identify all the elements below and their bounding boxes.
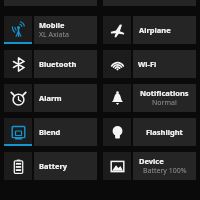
other: Bluetooth xyxy=(4,50,32,78)
button[interactable]: Airplane mode xyxy=(103,16,196,44)
staticText: Bluetooth xyxy=(39,59,77,69)
staticText: Normal xyxy=(152,98,177,108)
button[interactable]: Battery saving xyxy=(4,152,97,180)
other: Wi-Fi xyxy=(103,50,131,78)
other: Flashlight xyxy=(103,118,131,146)
staticText: Notifications xyxy=(140,88,189,98)
other: Mobile network xyxy=(4,16,32,44)
staticText: Device monitor xyxy=(139,156,190,166)
staticText: XL Axiata xyxy=(39,30,69,40)
staticText: Airplane mode xyxy=(139,25,190,35)
other: Notifications xyxy=(103,84,131,112)
staticText: Battery 100% xyxy=(143,166,187,176)
other: Battery saving xyxy=(4,152,32,180)
other: Device monitor xyxy=(103,152,131,180)
other: Blend xyxy=(4,118,32,146)
button[interactable]: Flashlight xyxy=(103,118,196,146)
staticText: Mobile network xyxy=(39,20,92,30)
button[interactable]: Alarm xyxy=(4,84,97,112)
staticText: Blend xyxy=(39,127,61,137)
button[interactable]: Device monitor xyxy=(103,152,196,180)
button[interactable]: Blend xyxy=(4,118,97,146)
button[interactable]: Wi-Fi xyxy=(103,50,196,78)
button[interactable]: Mobile network xyxy=(4,16,97,44)
other: Airplane mode xyxy=(103,16,131,44)
staticText: Wi-Fi xyxy=(138,59,157,69)
button[interactable]: Notifications xyxy=(103,84,196,112)
staticText: Flashlight xyxy=(146,127,183,137)
other: Alarm xyxy=(4,84,32,112)
staticText: Battery saving xyxy=(39,161,92,171)
staticText: Alarm xyxy=(39,93,62,103)
button[interactable]: Bluetooth xyxy=(4,50,97,78)
